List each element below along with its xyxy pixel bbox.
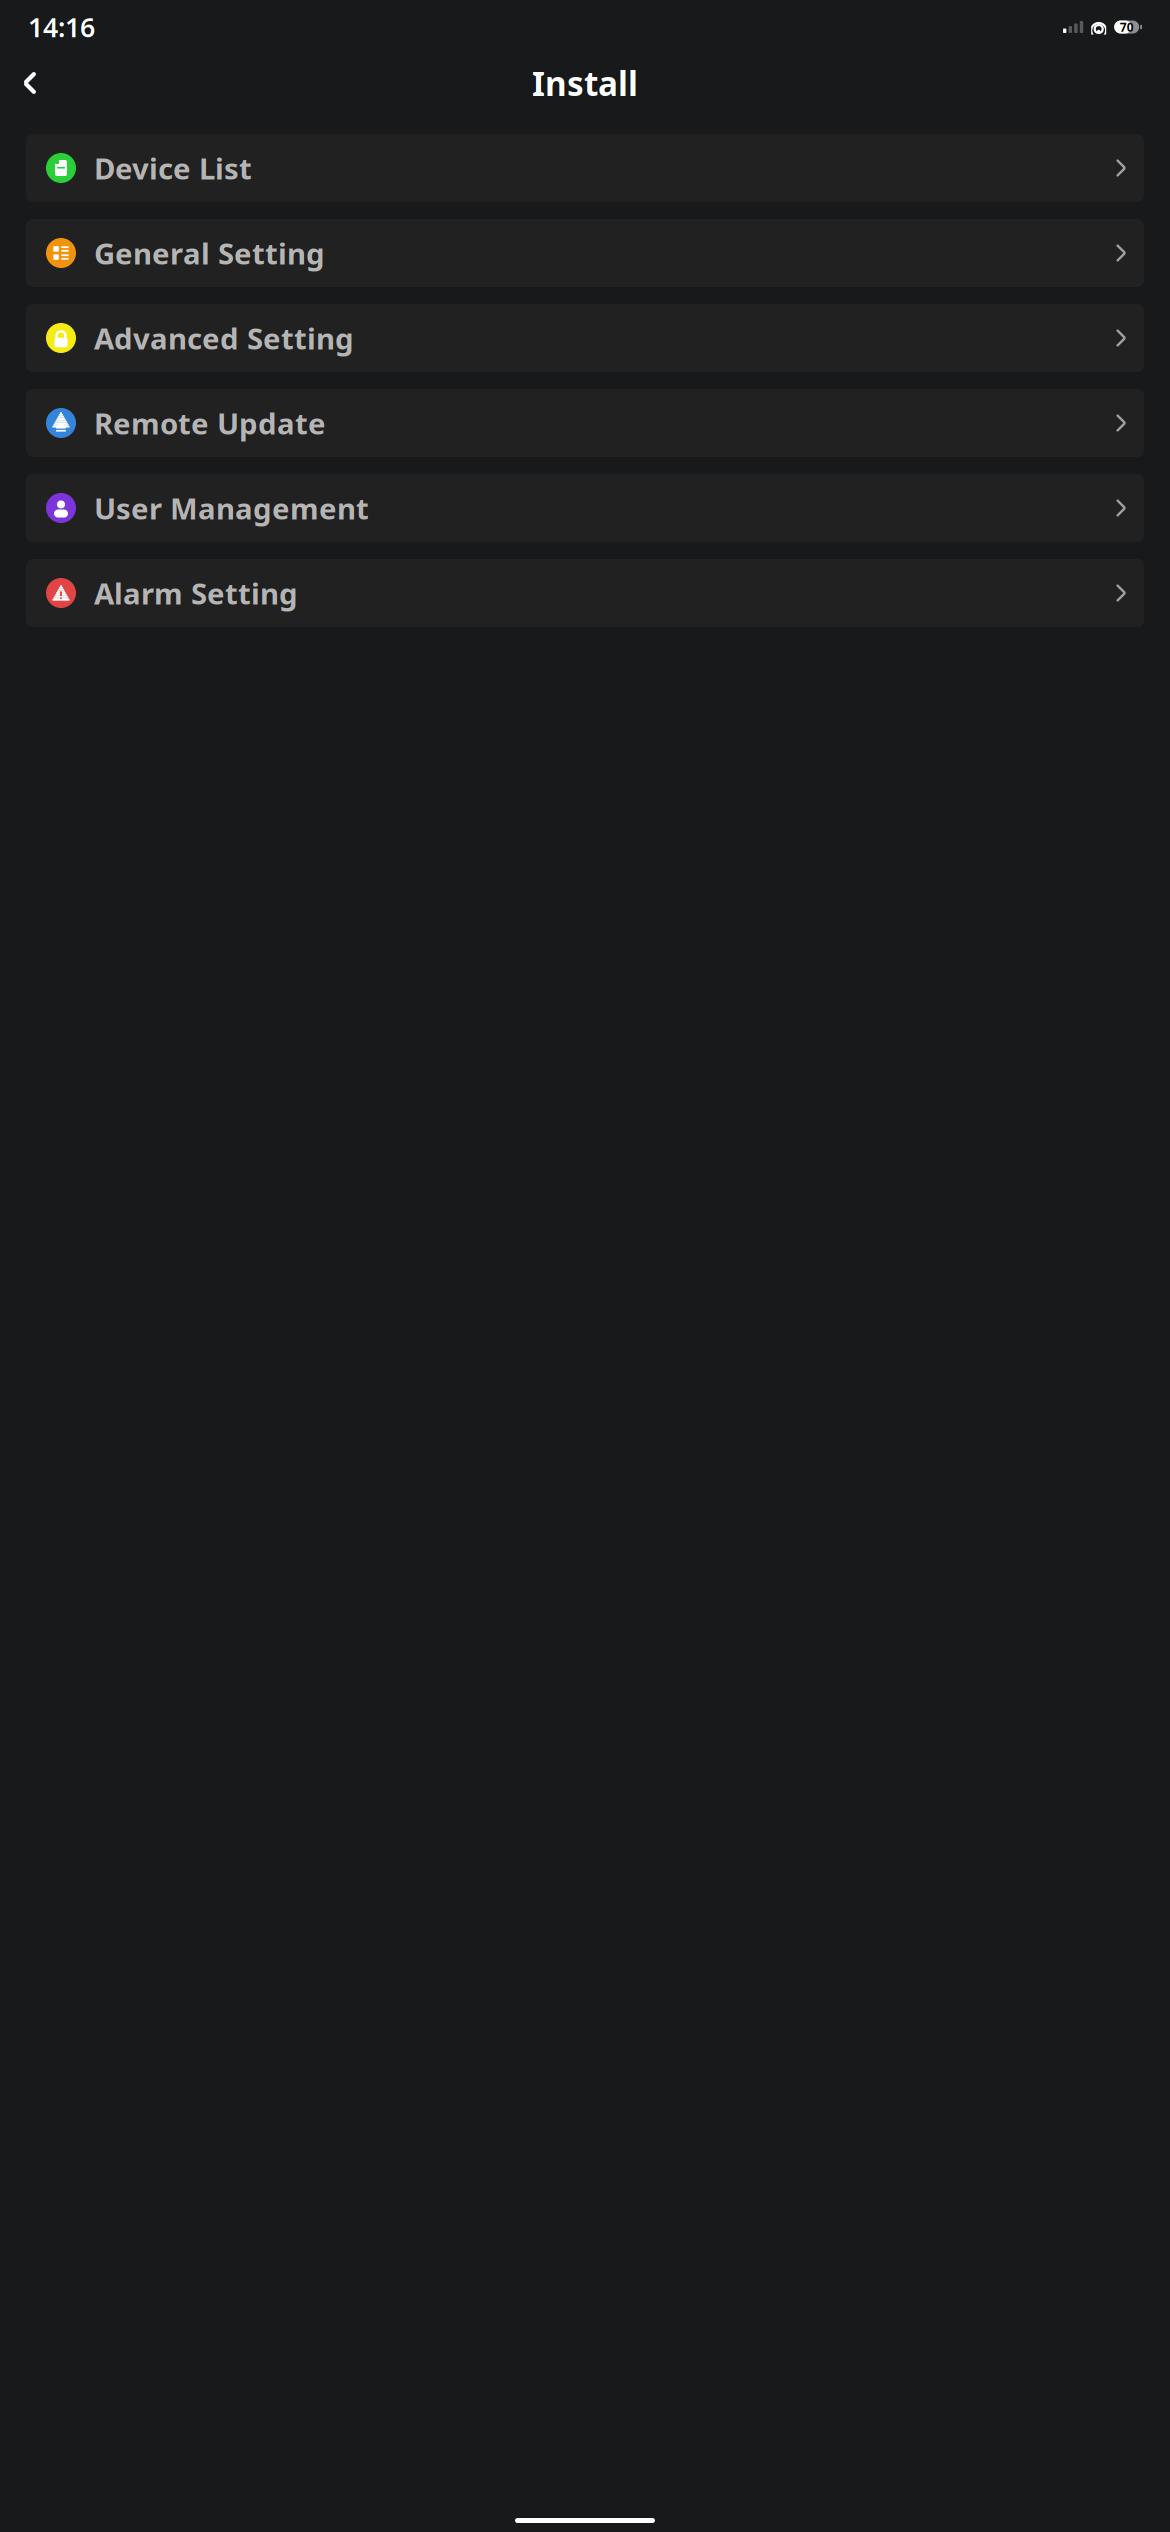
button[interactable]: Remote Update [26, 389, 1144, 457]
button[interactable]: User Management [26, 474, 1144, 542]
button[interactable]: General Setting [26, 219, 1144, 287]
staticText: 70 [1120, 19, 1134, 35]
button[interactable]: Back [8, 61, 52, 105]
staticText: Device List [94, 148, 252, 187]
button[interactable]: Device List [26, 134, 1144, 202]
button[interactable]: Advanced Setting [26, 304, 1144, 372]
staticText: General Setting [94, 233, 325, 272]
staticText: Install [532, 61, 638, 105]
staticText: Remote Update [94, 403, 326, 442]
staticText: Alarm Setting [94, 573, 298, 612]
staticText: Advanced Setting [94, 318, 354, 357]
button[interactable]: Alarm Setting [26, 559, 1144, 627]
staticText: 14:16 [28, 9, 95, 45]
staticText: User Management [94, 488, 369, 527]
